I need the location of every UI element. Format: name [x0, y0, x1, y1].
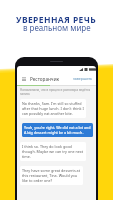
staticText: No thanks, Sam. I'm still so stuffed aft… [22, 101, 84, 116]
staticText: в реальном мире [23, 22, 91, 33]
button[interactable]: Yeah, you're right. We did eat a lot and… [22, 123, 93, 137]
button[interactable]: No thanks, Sam. I'm still so stuffed aft… [20, 99, 86, 118]
button[interactable]: They have some great desserts at this re… [20, 166, 83, 185]
button[interactable]: Menu [20, 75, 27, 82]
staticText: завершить [73, 76, 93, 81]
staticText: Напоминаем, что в процессе разговора вед… [20, 88, 91, 96]
button[interactable]: завершить [73, 76, 93, 81]
staticText: УВЕРЕННАЯ РЕЧЬ [16, 14, 97, 26]
button[interactable]: I think so. They do look good though. Ma… [20, 142, 86, 161]
staticText: Yeah, you're right. We did eat a lot and… [24, 125, 91, 135]
staticText: Ресторанчик [30, 76, 60, 82]
staticText: I think so. They do look good though. Ma… [22, 144, 84, 159]
staticText: They have some great desserts at this re… [22, 168, 81, 183]
